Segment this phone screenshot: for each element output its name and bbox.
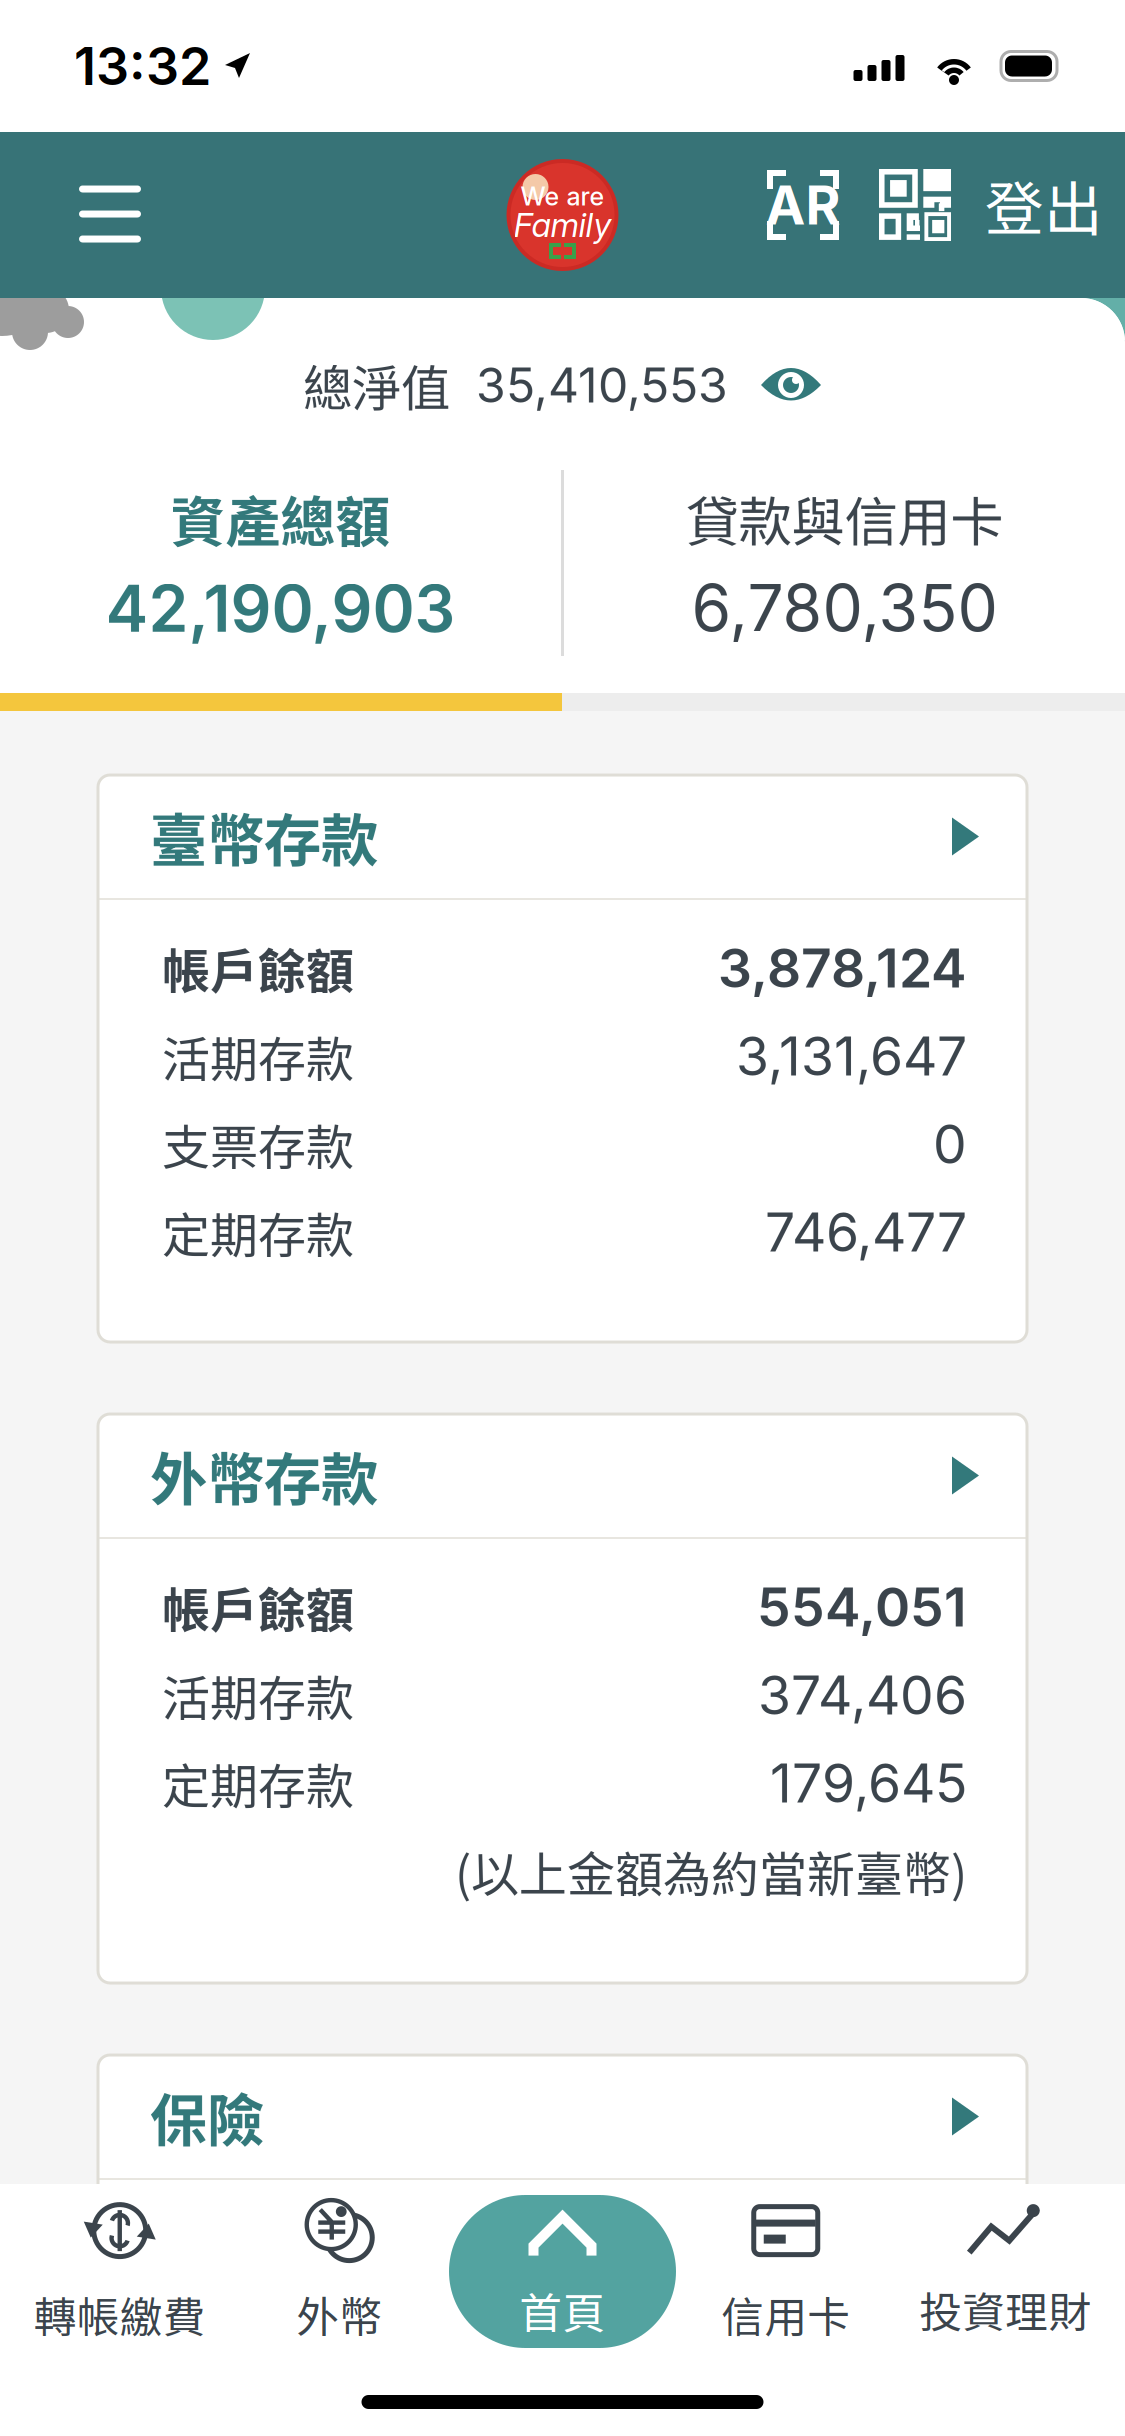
button[interactable]: AR	[767, 170, 839, 240]
staticText: AR	[765, 173, 840, 237]
button[interactable]: 轉帳繳費	[10, 2195, 229, 2348]
staticText: 3,131,647	[736, 1024, 967, 1088]
staticText: (以上金額為約當新臺幣)	[455, 1836, 967, 1906]
staticText: 6,780,350	[691, 569, 997, 646]
staticText: 3,878,124	[718, 936, 967, 1000]
staticText: 活期存款	[162, 1021, 354, 1091]
button[interactable]: 貸款與信用卡	[564, 480, 1125, 646]
staticText: 554,051	[757, 1575, 967, 1639]
staticText: 42,190,903	[105, 570, 455, 647]
staticText: 0	[933, 1112, 967, 1176]
staticText: 信用卡	[721, 2284, 850, 2345]
staticText: 資產總額	[170, 479, 390, 558]
button[interactable]: 外幣存款	[98, 1414, 1027, 1537]
staticText: 貸款與信用卡	[685, 480, 1003, 557]
staticText: 登出	[985, 162, 1103, 247]
staticText: 首頁	[519, 2280, 605, 2341]
staticText: 定期存款	[162, 1748, 354, 1818]
staticText: 35,410,553	[476, 356, 728, 414]
staticText: 臺幣存款	[150, 795, 378, 878]
button[interactable]: 投資理財	[895, 2195, 1115, 2348]
staticText: 帳戶餘額	[162, 1572, 354, 1642]
button[interactable]: Menu	[62, 137, 158, 273]
staticText: 投資理財	[919, 2279, 1091, 2340]
button[interactable]: 保險	[98, 2055, 1027, 2178]
button[interactable]: 首頁	[449, 2195, 676, 2348]
staticText: 外幣	[296, 2284, 382, 2345]
button[interactable]: 總淨值	[303, 354, 822, 416]
staticText: 179,645	[770, 1751, 967, 1815]
staticText: 總淨值	[303, 349, 450, 421]
staticText: Family	[513, 205, 611, 245]
staticText: 外幣存款	[150, 1434, 378, 1517]
staticText: 13:32	[74, 34, 211, 97]
staticText: We are	[520, 181, 604, 212]
staticText: 支票存款	[162, 1109, 354, 1179]
staticText: 活期存款	[162, 1660, 354, 1730]
staticText: 746,477	[765, 1200, 967, 1264]
button[interactable]: 信用卡	[676, 2195, 895, 2348]
staticText: 374,406	[758, 1663, 967, 1727]
staticText: 轉帳繳費	[34, 2284, 206, 2345]
staticText: 定期存款	[162, 1197, 354, 1267]
button[interactable]: 外幣	[229, 2195, 449, 2348]
button[interactable]: 登出	[985, 162, 1103, 247]
staticText: 帳戶餘額	[162, 933, 354, 1003]
button[interactable]: Scan QR code	[879, 169, 951, 241]
button[interactable]: 資產總額	[0, 479, 561, 647]
staticText: 保險	[150, 2075, 264, 2158]
button[interactable]: 臺幣存款	[98, 775, 1027, 898]
